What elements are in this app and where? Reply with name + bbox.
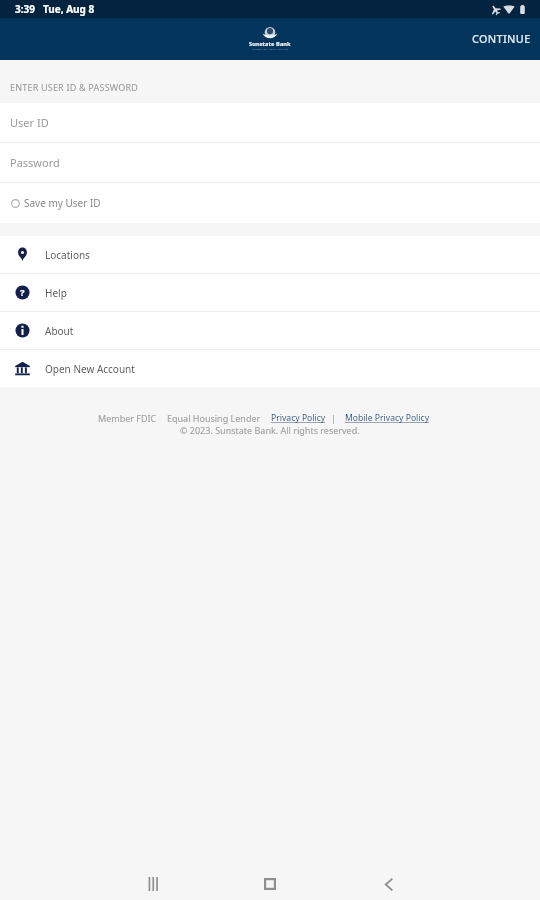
- staticText: Privacy Policy: [271, 412, 326, 424]
- staticText: About: [45, 324, 74, 338]
- staticText: Mobile Privacy Policy: [345, 412, 430, 424]
- button[interactable]: Recent apps: [132, 869, 174, 899]
- staticText: Tue, Aug 8: [43, 2, 95, 16]
- button[interactable]: Open New Account: [0, 350, 540, 387]
- staticText: Open New Account: [45, 362, 135, 376]
- staticText: Equal Housing Lender: [167, 412, 261, 424]
- staticText: User ID: [10, 115, 49, 130]
- button[interactable]: CONTINUE: [458, 21, 540, 57]
- button[interactable]: Save my User ID: [0, 183, 540, 223]
- staticText: |: [331, 412, 336, 424]
- button[interactable]: Back: [368, 869, 410, 899]
- button[interactable]: About: [0, 312, 540, 349]
- button[interactable]: User ID: [0, 103, 540, 142]
- button[interactable]: Locations: [0, 236, 540, 273]
- button[interactable]: ?: [0, 274, 540, 311]
- staticText: 3:39: [15, 2, 35, 16]
- staticText: Sunstate Bank: [249, 40, 291, 48]
- staticText: ENTER USER ID & PASSWORD: [10, 81, 139, 93]
- staticText: Member FDIC: [98, 412, 157, 424]
- button[interactable]: Home: [249, 869, 291, 899]
- button[interactable]: Mobile Privacy Policy: [345, 412, 430, 424]
- staticText: © 2023. Sunstate Bank. All rights reserv…: [180, 424, 360, 436]
- staticText: CONTINUE: [472, 31, 531, 46]
- staticText: ?: [20, 286, 25, 299]
- staticText: Help: [45, 286, 67, 300]
- button[interactable]: Privacy Policy: [271, 412, 326, 424]
- staticText: Save my User ID: [24, 196, 101, 210]
- staticText: Locations: [45, 248, 90, 262]
- staticText: Password: [10, 155, 60, 170]
- staticText: MEMBER FDIC EQUAL HOUSING: [252, 48, 289, 51]
- button[interactable]: Password: [0, 143, 540, 182]
